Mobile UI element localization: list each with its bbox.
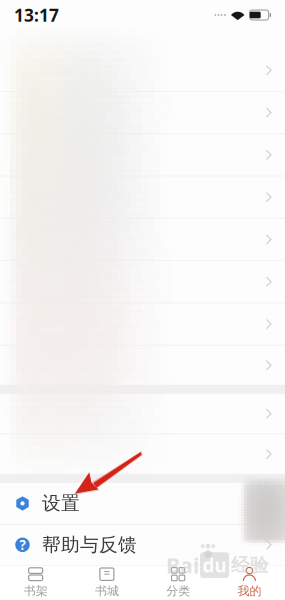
button[interactable]	[0, 261, 285, 302]
button[interactable]	[0, 434, 285, 474]
staticText: 设置	[42, 492, 80, 515]
staticText: ?	[19, 536, 25, 554]
button[interactable]: ?	[0, 525, 285, 565]
staticText: 书架	[24, 584, 48, 598]
button[interactable]: 书城	[71, 565, 142, 600]
button[interactable]	[0, 49, 285, 91]
staticText: 帮助与反馈	[42, 533, 137, 556]
staticText: 我的	[237, 584, 261, 598]
staticText: 书城	[95, 584, 119, 598]
staticText: 经验	[231, 554, 269, 577]
button[interactable]	[0, 303, 285, 345]
button[interactable]	[0, 134, 285, 176]
staticText: Bai	[166, 551, 199, 579]
button[interactable]: 我的	[214, 565, 285, 600]
button[interactable]: 设置	[0, 483, 285, 524]
button[interactable]	[0, 176, 285, 218]
button[interactable]	[0, 394, 285, 433]
staticText: 分类	[166, 584, 190, 598]
button[interactable]: 分类	[142, 565, 214, 600]
button[interactable]	[0, 346, 285, 385]
button[interactable]: 书架	[0, 565, 71, 600]
staticText: du	[202, 553, 226, 578]
button[interactable]	[0, 219, 285, 260]
staticText: 13:17	[14, 3, 59, 26]
button[interactable]	[0, 92, 285, 133]
